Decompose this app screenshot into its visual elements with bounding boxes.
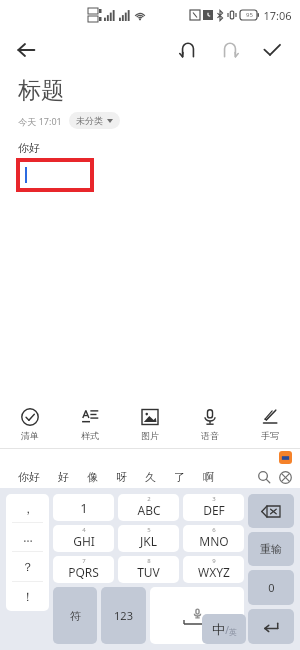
staticText: 语音 [201,430,219,441]
staticText: 清单 [21,430,39,441]
staticText: 了 [174,470,185,484]
button[interactable]: 2 [118,494,179,521]
staticText: 你好 [18,470,40,484]
button[interactable]: Search [254,467,274,487]
button[interactable]: 中 [202,614,246,644]
button[interactable]: 1 [53,494,114,521]
button[interactable]: ， [6,494,49,611]
staticText: 样式 [81,430,99,441]
button[interactable]: 未分类 [69,112,120,129]
button[interactable]: 0 [248,570,294,605]
button[interactable]: 3 [183,494,244,521]
staticText: 啊 [203,470,214,484]
button[interactable]: Done [254,32,290,68]
staticText: 8 [147,557,151,565]
button[interactable]: 6 [183,525,244,552]
button[interactable]: 样式 [60,400,120,448]
button[interactable]: Close keyboard panel [274,466,296,488]
button[interactable]: 7 [53,556,114,583]
button[interactable]: 像 [81,470,104,484]
staticText: ！ [22,589,34,604]
button[interactable]: 手写 [240,400,300,448]
staticText: 3 [212,495,216,503]
button[interactable]: Delete [248,494,294,528]
button[interactable]: 图片 [120,400,180,448]
button[interactable]: 5 [118,525,179,552]
staticText: 标题 [18,76,64,105]
button[interactable]: Input method logo [279,451,292,464]
staticText: ABC [137,502,161,518]
button[interactable]: 你好 [12,470,46,484]
button[interactable]: 好 [52,470,75,484]
button[interactable]: Back [8,32,44,68]
staticText: 好 [58,470,69,484]
staticText: 2 [147,495,151,503]
staticText: 7 [82,557,86,565]
staticText: 0 [268,580,275,595]
button[interactable]: 久 [139,470,162,484]
staticText: WXYZ [198,564,230,580]
button[interactable]: 啊 [197,470,220,484]
staticText: GHI [73,533,95,549]
staticText: 9 [212,557,216,565]
staticText: MNO [199,533,229,549]
staticText: 1 [80,499,88,517]
staticText: DEF [203,502,225,518]
staticText: 4 [82,526,86,534]
staticText: JKL [140,533,157,549]
staticText: 123 [114,608,133,623]
button[interactable]: 语音 [180,400,240,448]
staticText: PQRS [68,564,99,580]
staticText: 未分类 [76,115,103,126]
button[interactable]: 清单 [0,400,60,448]
staticText: 95 [246,11,253,19]
button[interactable]: 重输 [248,532,294,566]
staticText: 呀 [116,470,127,484]
button[interactable]: 符 [53,587,97,644]
button[interactable]: 了 [168,470,191,484]
staticText: 图片 [141,430,159,441]
button[interactable]: 8 [118,556,179,583]
staticText: 像 [87,470,98,484]
button[interactable]: Redo [212,32,248,68]
staticText: TUV [137,564,160,580]
staticText: 今天 17:01 [18,115,62,127]
staticText: 17:06 [263,8,292,23]
button[interactable]: 呀 [110,470,133,484]
button[interactable]: Space [150,587,244,644]
button[interactable]: 4 [53,525,114,552]
staticText: 5 [147,526,151,534]
staticText: ， [22,501,34,516]
button[interactable]: 9 [183,556,244,583]
staticText: … [23,529,33,545]
staticText: ？ [22,559,34,574]
staticText: 英 [229,627,237,637]
button[interactable]: Undo [170,32,206,68]
button[interactable]: Enter [248,609,294,644]
staticText: 符 [70,609,81,623]
staticText: 手写 [261,430,279,441]
staticText: 久 [145,470,156,484]
staticText: 重输 [260,542,282,556]
staticText: 6 [212,526,216,534]
staticText: 中 [212,621,225,637]
staticText: / [225,623,229,637]
staticText: 你好 [18,141,40,155]
button[interactable]: 123 [101,587,146,644]
